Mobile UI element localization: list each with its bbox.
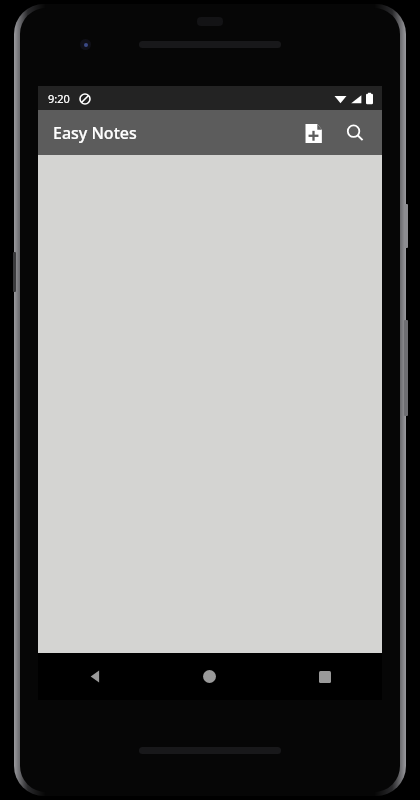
- button[interactable]: Recent apps: [267, 653, 382, 700]
- staticText: 9:20: [48, 91, 70, 106]
- button[interactable]: Home: [152, 653, 267, 700]
- button[interactable]: Search: [336, 114, 374, 152]
- button[interactable]: New note: [294, 114, 332, 152]
- button[interactable]: Back: [38, 653, 152, 700]
- staticText: Easy Notes: [53, 122, 137, 144]
